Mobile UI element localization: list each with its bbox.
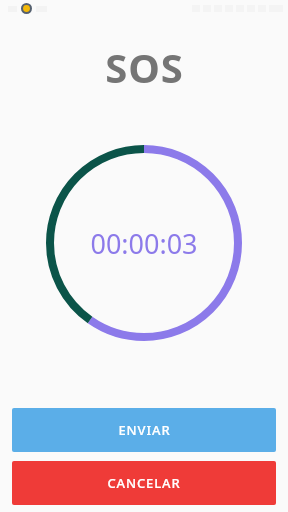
staticText: 00:00:03: [90, 225, 198, 262]
staticText: CANCELAR: [107, 474, 181, 492]
staticText: SOS: [105, 40, 184, 94]
button[interactable]: ENVIAR: [12, 408, 276, 452]
button[interactable]: CANCELAR: [12, 461, 276, 505]
staticText: ENVIAR: [118, 421, 171, 439]
